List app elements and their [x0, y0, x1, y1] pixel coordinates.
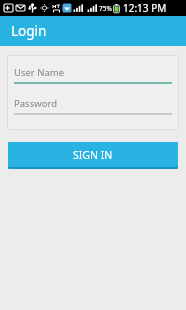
staticText: User Name [14, 66, 65, 79]
staticText: 75% [99, 4, 112, 13]
staticText: SIGN IN [73, 148, 113, 162]
staticText: 12:13 PM [123, 1, 167, 15]
button[interactable]: User Name [14, 66, 172, 84]
staticText: Password [14, 97, 57, 110]
staticText: Login [11, 22, 47, 40]
button[interactable]: SIGN IN [8, 142, 178, 169]
button[interactable]: Password [14, 97, 172, 115]
